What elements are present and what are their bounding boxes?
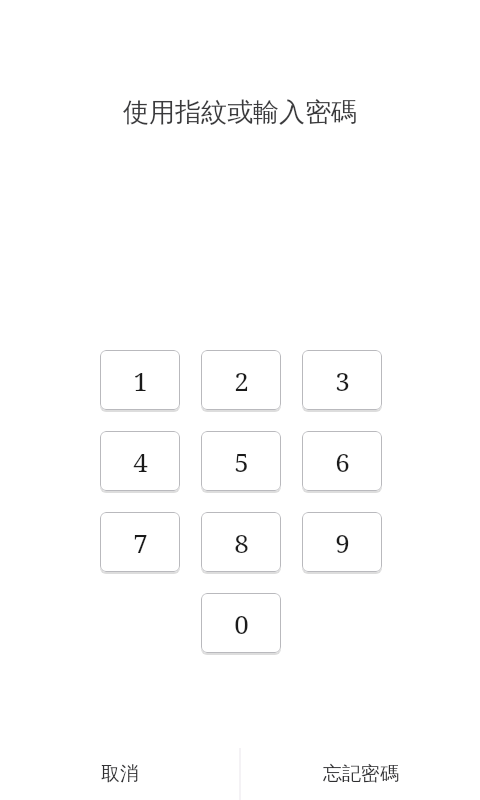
- staticText: 0: [234, 606, 249, 641]
- button[interactable]: 忘記密碼: [241, 748, 480, 800]
- staticText: 6: [335, 444, 350, 479]
- button[interactable]: 7: [100, 512, 180, 572]
- button[interactable]: 9: [302, 512, 382, 572]
- button[interactable]: 3: [302, 350, 382, 410]
- button[interactable]: 8: [201, 512, 281, 572]
- staticText: 5: [234, 444, 249, 479]
- staticText: 7: [133, 525, 148, 560]
- staticText: 使用指紋或輸入密碼: [123, 96, 357, 129]
- staticText: 3: [335, 363, 350, 398]
- staticText: 8: [234, 525, 249, 560]
- staticText: 忘記密碼: [323, 762, 399, 786]
- staticText: 4: [133, 444, 148, 479]
- button[interactable]: 4: [100, 431, 180, 491]
- button[interactable]: 1: [100, 350, 180, 410]
- staticText: 取消: [101, 762, 139, 786]
- button[interactable]: 2: [201, 350, 281, 410]
- button[interactable]: 5: [201, 431, 281, 491]
- staticText: 1: [133, 363, 148, 398]
- button[interactable]: 0: [201, 593, 281, 653]
- button[interactable]: 6: [302, 431, 382, 491]
- button[interactable]: 取消: [0, 748, 239, 800]
- staticText: 2: [234, 363, 249, 398]
- staticText: 9: [335, 525, 350, 560]
